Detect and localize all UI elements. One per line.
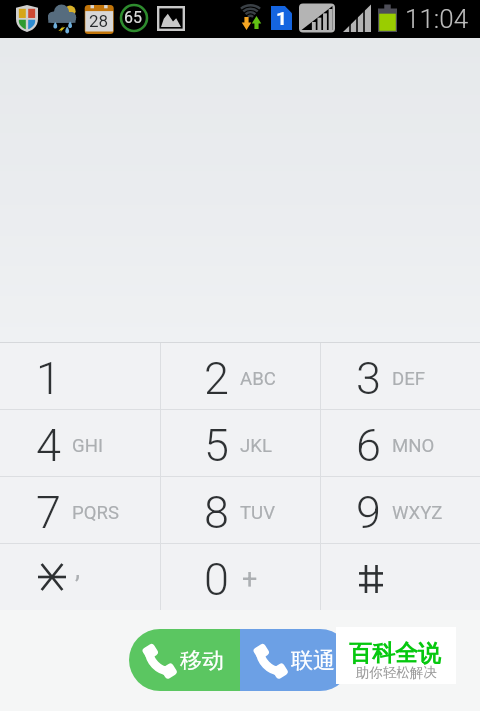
staticText: 1 [36,352,61,405]
staticText: 6 [356,419,381,472]
staticText: 助你轻松解决 [356,664,437,681]
staticText: WXYZ [392,502,443,524]
button[interactable]: 3 [321,343,480,409]
staticText: 移动 [180,647,224,675]
button[interactable]: 7 [0,477,160,543]
staticText: GHI [72,435,103,457]
button[interactable]: 联通 [240,629,351,691]
staticText: 11:04 [405,4,469,34]
button[interactable]: 5 [161,410,320,476]
button[interactable]: 0 [161,544,320,610]
button[interactable] [321,544,480,610]
button[interactable]: 2 [161,343,320,409]
staticText: JKL [240,435,272,457]
staticText: 28 [89,11,109,31]
staticText: 1 [276,7,287,29]
button[interactable]: 6 [321,410,480,476]
button[interactable]: 8 [161,477,320,543]
staticText: ABC [240,368,276,390]
staticText: 8 [204,486,229,539]
staticText: PQRS [72,502,120,524]
staticText: 联通 [291,647,335,675]
staticText: DEF [392,368,426,390]
staticText: 百科全说 [349,639,441,668]
staticText: , [75,554,81,584]
staticText: 9 [356,486,381,539]
staticText: 65 [124,8,142,27]
button[interactable]: 移动 [129,629,240,691]
staticText: TUV [240,502,275,524]
button[interactable]: 1 [0,343,160,409]
staticText: 5 [204,419,229,472]
staticText: 3 [356,352,381,405]
button[interactable]: 4 [0,410,160,476]
button[interactable]: , [0,544,160,610]
button[interactable]: 9 [321,477,480,543]
staticText: + [242,563,258,595]
staticText: 0 [204,553,229,606]
staticText: 4 [36,419,61,472]
staticText: MNO [392,435,435,457]
staticText: 2 [204,352,229,405]
staticText: 7 [36,486,61,539]
